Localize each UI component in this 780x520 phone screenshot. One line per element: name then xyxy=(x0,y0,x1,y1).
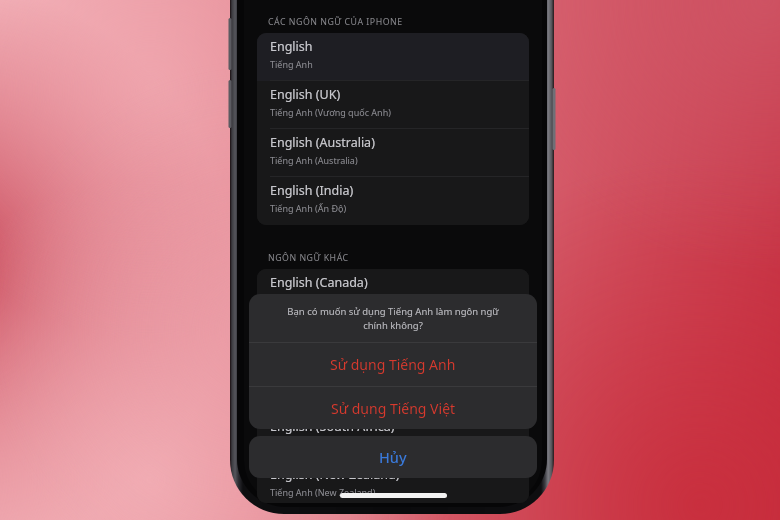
staticText: English (South Africa) xyxy=(270,418,395,435)
staticText: English xyxy=(270,38,313,55)
button[interactable]: English (New Zealand) xyxy=(257,461,529,503)
staticText: English (Singapore) xyxy=(270,370,384,387)
staticText: English (Canada) xyxy=(270,274,368,291)
staticText: Tiếng Anh (Ấn Độ) xyxy=(270,202,347,214)
staticText: English (Australia) xyxy=(270,134,375,151)
staticText: Tiếng Anh xyxy=(270,58,313,70)
staticText: English (UK) xyxy=(270,86,341,103)
staticText: Sử dụng Tiếng Anh xyxy=(330,355,456,374)
button[interactable]: English (Australia) xyxy=(257,129,529,177)
button[interactable]: English (Ireland) xyxy=(257,317,529,365)
button[interactable]: English (Singapore) xyxy=(257,365,529,413)
button[interactable]: English (UK) xyxy=(257,81,529,129)
button[interactable]: Hủy xyxy=(249,436,537,478)
staticText: Tiếng Anh (Vương quốc Anh) xyxy=(270,106,391,118)
staticText: Tiếng Anh (Ireland) xyxy=(270,342,351,354)
button[interactable]: English xyxy=(257,33,529,81)
button[interactable]: Sử dụng Tiếng Anh xyxy=(249,343,537,386)
button[interactable]: English (South Africa) xyxy=(257,413,529,461)
staticText: English (Ireland) xyxy=(270,322,366,339)
staticText: Tiếng Anh (Australia) xyxy=(270,154,358,166)
staticText: English (New Zealand) xyxy=(270,466,400,483)
button[interactable]: Sử dụng Tiếng Việt xyxy=(249,387,537,429)
staticText: Sử dụng Tiếng Việt xyxy=(331,399,456,418)
button[interactable]: English (India) xyxy=(257,177,529,225)
staticText: Tiếng Anh (New Zealand) xyxy=(270,486,376,498)
staticText: English (India) xyxy=(270,182,354,199)
staticText: Hủy xyxy=(379,447,407,467)
staticText: Bạn có muốn sử dụng Tiếng Anh làm ngôn n… xyxy=(278,305,508,332)
button[interactable]: English (Canada) xyxy=(257,269,529,317)
staticText: NGÔN NGỮ KHÁC xyxy=(268,252,349,264)
staticText: CÁC NGÔN NGỮ CỦA IPHONE xyxy=(268,16,403,28)
